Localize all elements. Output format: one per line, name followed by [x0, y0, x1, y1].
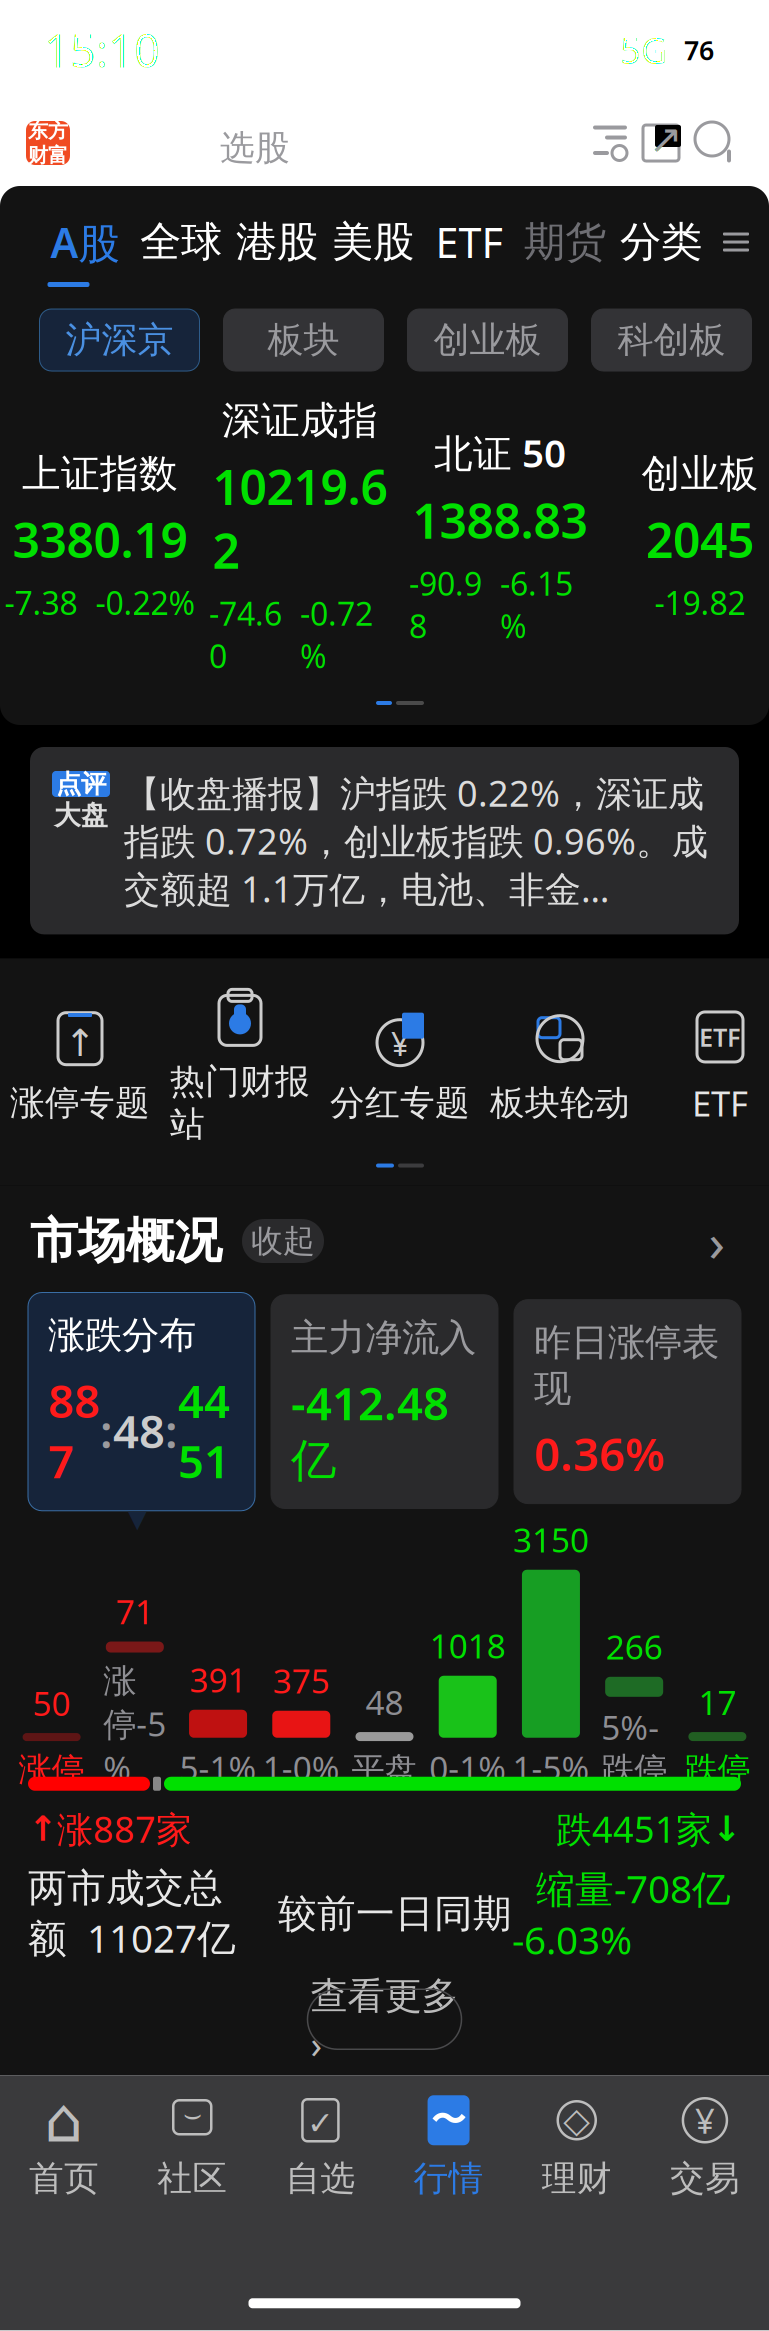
staticText: -90.98 [409, 562, 482, 647]
staticText: › [708, 1206, 725, 1276]
button[interactable]: ✓ [256, 2095, 384, 2200]
staticText: 较前一日同期 [278, 1890, 512, 1938]
button[interactable]: ⌂ [0, 2095, 128, 2200]
staticText: 收起 [251, 1221, 315, 1261]
staticText: 〜 [431, 2099, 466, 2142]
button[interactable]: 板块 [223, 309, 383, 371]
staticText: 东方 财富 [28, 118, 68, 167]
staticText: ↗ [649, 116, 683, 162]
button[interactable]: 涨跌分布 [28, 1292, 255, 1511]
staticText: 涨跌分布 [48, 1312, 196, 1358]
button[interactable]: ¥ [641, 2095, 769, 2200]
staticText: 10219.62 [212, 454, 387, 582]
staticText: 5-1% [180, 1746, 257, 1790]
staticText: 【收盘播报】沪指跌 0.22%，深证成指跌 0.72%，创业板指跌 0.96%。… [124, 769, 708, 912]
staticText: ↑ [28, 1809, 57, 1848]
button[interactable]: 深证成指 [200, 397, 400, 677]
button[interactable]: 点评 [0, 725, 769, 958]
staticText: 1-0% [263, 1746, 340, 1790]
button[interactable]: 更多市场概况 [695, 1219, 739, 1263]
staticText: ▾ [128, 1497, 147, 1539]
staticText: 2045 [646, 508, 754, 571]
staticText: 涨停专题 [10, 1082, 150, 1124]
staticText: 板块 [267, 318, 339, 362]
staticText: 创业板 [433, 318, 541, 362]
staticText: 4451 [178, 1370, 230, 1491]
staticText: 创业板 [641, 450, 758, 498]
button[interactable]: 查看更多 › [307, 1989, 461, 2049]
button[interactable]: 筛选设置 [587, 121, 633, 165]
staticText: 行情 [88, 109, 200, 177]
button[interactable]: 热门财报站 [160, 988, 320, 1146]
staticText: 分类 [620, 217, 702, 267]
button[interactable]: 选股 [200, 117, 290, 169]
button[interactable]: ETF [421, 212, 517, 272]
staticText: 期货 [524, 217, 606, 267]
staticText: 自选 [285, 2157, 355, 2200]
button[interactable]: 上证指数 [0, 450, 200, 624]
staticText: -412.48亿 [291, 1373, 449, 1488]
staticText: A股 [50, 214, 119, 269]
staticText: 48 [365, 1680, 403, 1724]
staticText: 5%-跌停 [601, 1705, 667, 1790]
staticText: 分红专题 [330, 1082, 470, 1124]
staticText: 社区 [157, 2157, 227, 2200]
button[interactable]: 主力净流入 [271, 1295, 498, 1508]
button[interactable]: 板块轮动 [480, 1010, 640, 1124]
button[interactable]: 港股 [229, 212, 325, 272]
staticText: : [100, 1400, 113, 1461]
staticText: ETF [435, 215, 502, 269]
staticText: 5G [620, 26, 667, 74]
button[interactable]: ¥ [320, 1010, 480, 1124]
staticText: ETF [692, 1080, 748, 1126]
button[interactable]: ETF [640, 1008, 769, 1126]
staticText: 理财 [542, 2157, 612, 2200]
button[interactable]: ◇ [513, 2095, 641, 2200]
button[interactable]: 美股 [325, 212, 421, 272]
button[interactable]: 收起 [222, 1219, 324, 1263]
button[interactable]: ⌣ [128, 2095, 256, 2200]
staticText: -74.60 [209, 592, 282, 677]
button[interactable]: 北证 50 [400, 427, 600, 647]
button[interactable]: 昨日涨停表现 [514, 1300, 741, 1504]
staticText: 71 [116, 1589, 154, 1634]
button[interactable]: ↑ [0, 1010, 160, 1124]
button[interactable]: 沪深京 [39, 309, 199, 371]
staticText: 1-5% [512, 1746, 589, 1790]
button[interactable]: 搜索 [689, 117, 743, 169]
staticText: 0.36% [534, 1423, 665, 1484]
button[interactable]: 科创板 [591, 309, 751, 371]
button[interactable]: 行情 [70, 109, 200, 177]
staticText: 美股 [332, 217, 414, 267]
staticText: 大盘 [54, 799, 108, 832]
staticText: 北证 50 [434, 427, 566, 478]
staticText: ↑ [64, 1022, 95, 1064]
button[interactable]: 分享 [633, 118, 689, 168]
staticText: -6.15% [500, 562, 573, 647]
staticText: ¥ [391, 1022, 409, 1065]
staticText: 3150 [513, 1517, 589, 1562]
button[interactable]: 分类 [613, 212, 709, 272]
button[interactable]: 更多分类 [709, 212, 763, 272]
staticText: 391 [190, 1657, 247, 1702]
staticText: ⌣ [183, 2101, 202, 2130]
staticText: 沪深京 [65, 318, 173, 362]
staticText: 港股 [236, 217, 318, 267]
staticText: 全球 [140, 217, 222, 267]
button[interactable]: 期货 [517, 212, 613, 272]
staticText: -7.38 [4, 581, 77, 624]
staticText: 涨停-5% [103, 1661, 166, 1790]
staticText: -0.72% [300, 592, 373, 677]
staticText: 主力净流入 [291, 1315, 476, 1361]
button[interactable]: A股 [37, 212, 133, 272]
staticText: ETF [699, 1020, 741, 1054]
staticText: 887 [48, 1370, 100, 1491]
button[interactable]: 〜 [384, 2095, 513, 2200]
button[interactable]: 创业板 [407, 309, 567, 371]
staticText: -0.22% [95, 581, 195, 624]
staticText: 15:10 [44, 20, 160, 80]
staticText: 点评 [56, 768, 106, 799]
button[interactable]: 创业板 [600, 450, 769, 624]
button[interactable]: 全球 [133, 212, 229, 272]
staticText: 深证成指 [222, 397, 378, 444]
